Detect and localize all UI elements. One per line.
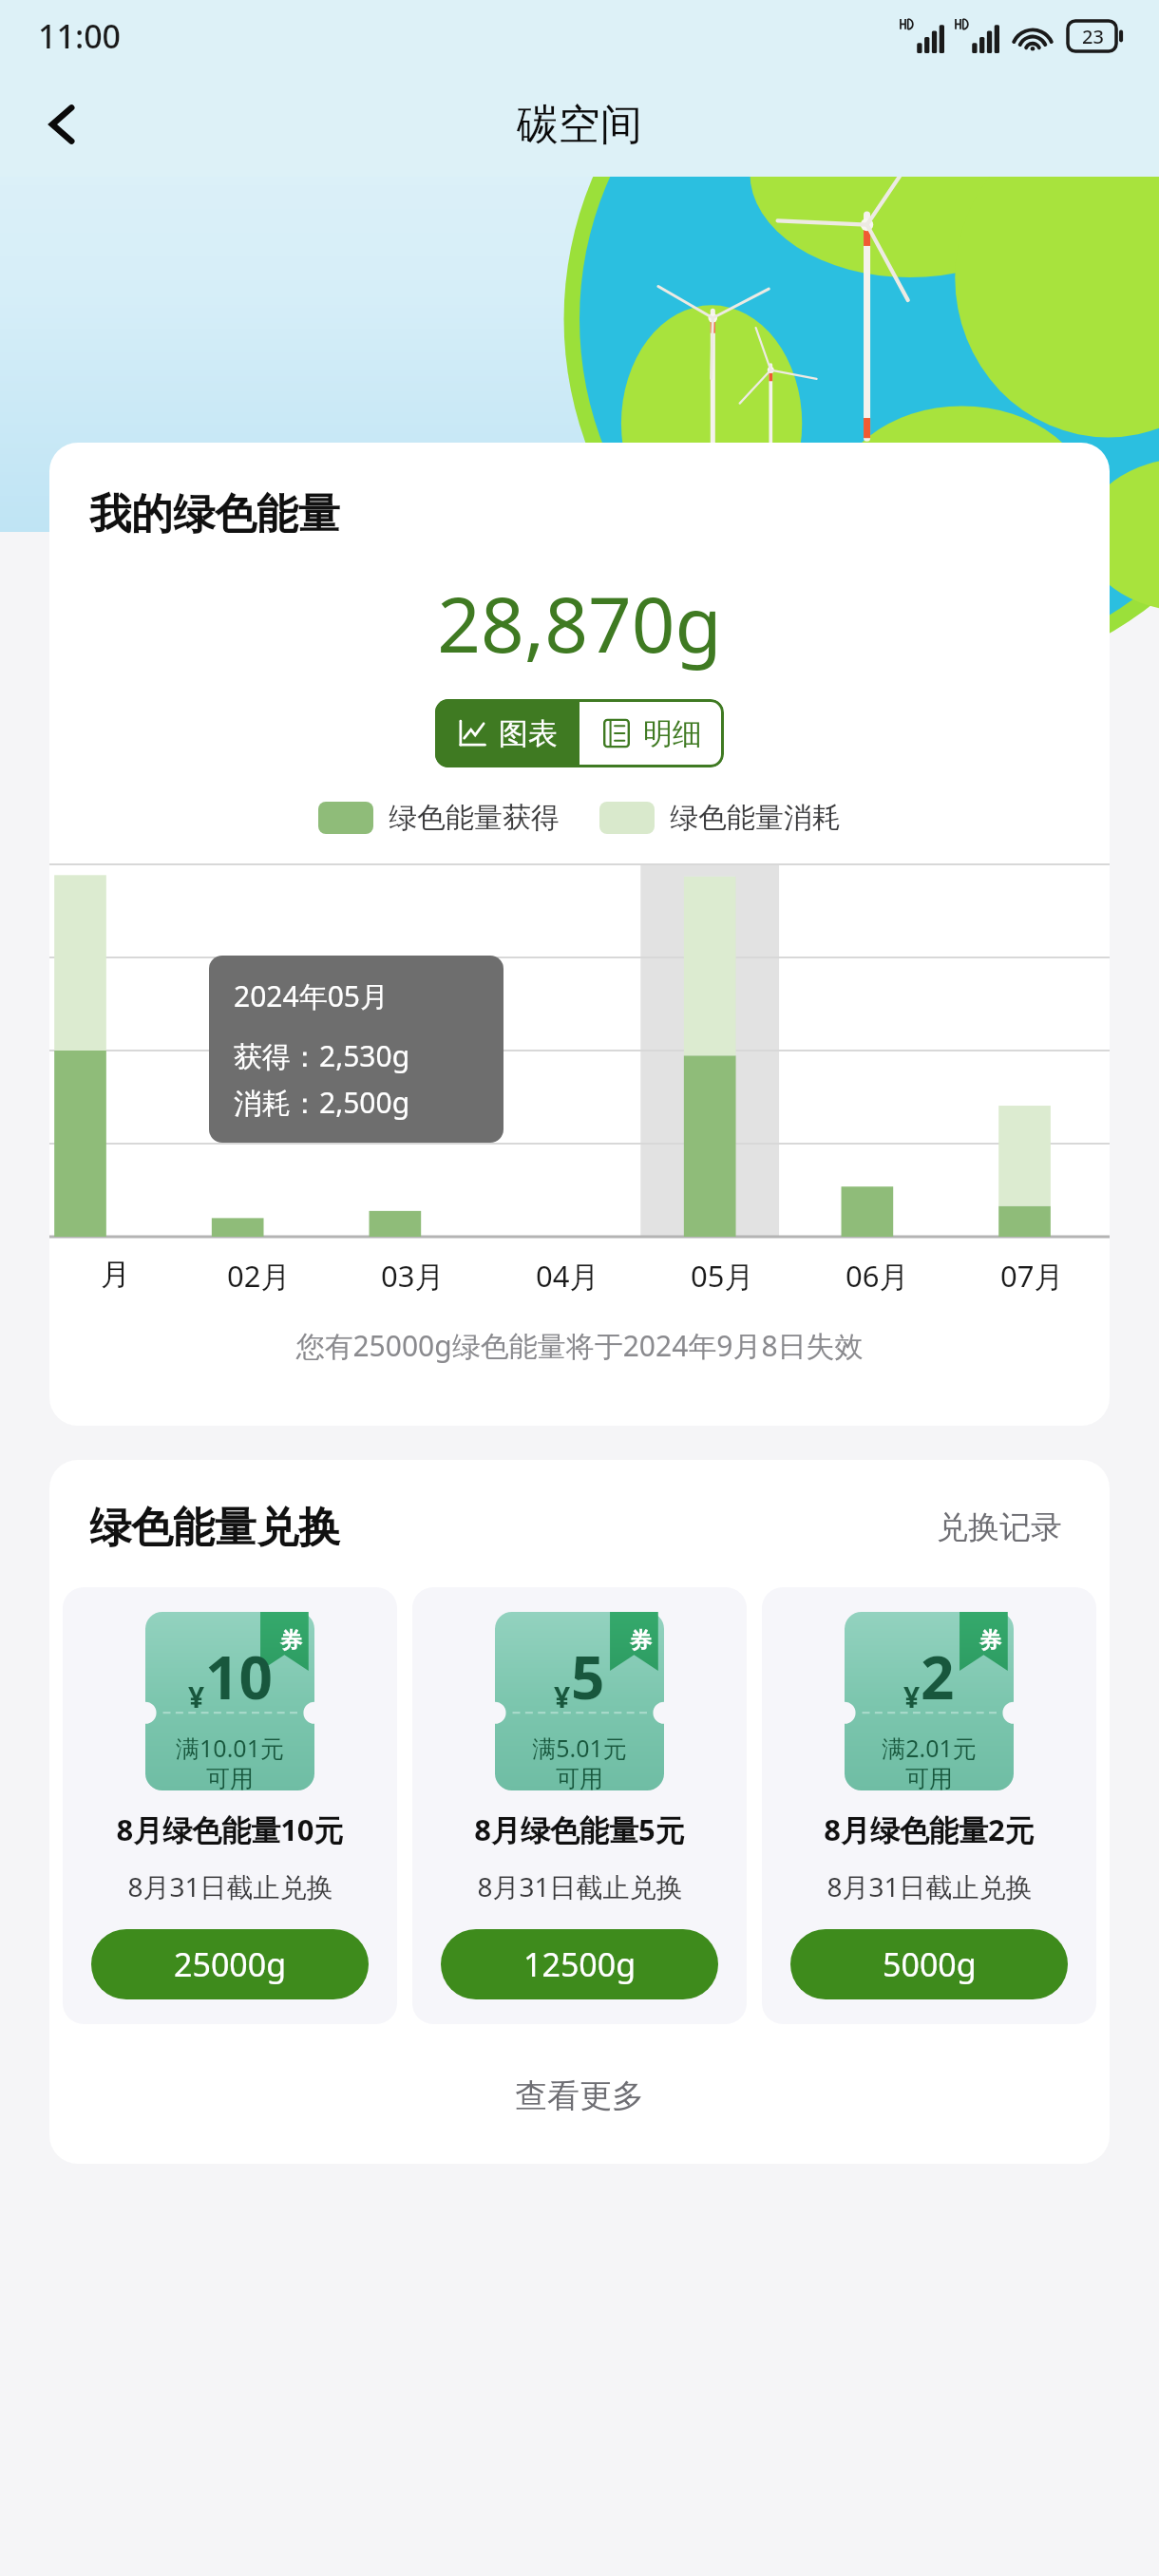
button[interactable]: 查看更多 (486, 2066, 673, 2126)
staticText: 2 (921, 1637, 955, 1716)
button[interactable]: Back (23, 85, 103, 164)
staticText: 8月绿色能量10元 (116, 1809, 344, 1849)
staticText: 兑换记录 (937, 1507, 1062, 1547)
staticText: 8月31日截止兑换 (477, 1868, 683, 1904)
staticText: 满2.01元 (882, 1732, 977, 1764)
staticText: 8月绿色能量2元 (824, 1809, 1035, 1849)
staticText: 10 (205, 1637, 273, 1716)
button[interactable]: 12500g (441, 1929, 718, 1999)
button[interactable]: ¥ (412, 1587, 747, 2024)
staticText: 月 (101, 1256, 130, 1293)
staticText: 5000g (883, 1942, 977, 1986)
staticText: 02月 (227, 1256, 291, 1296)
staticText: 我的绿色能量 (89, 488, 340, 540)
staticText: ¥ (554, 1677, 571, 1716)
staticText: ¥ (188, 1677, 205, 1716)
staticText: 获得：2,530g (234, 1036, 410, 1075)
staticText: 明细 (643, 715, 702, 752)
staticText: 25000g (174, 1942, 287, 1986)
staticText: 券 (280, 1627, 302, 1655)
staticText: 绿色能量消耗 (670, 800, 841, 836)
staticText: 06月 (845, 1256, 909, 1296)
staticText: 28,870g (49, 571, 1110, 674)
staticText: 8月31日截止兑换 (826, 1868, 1033, 1904)
staticText: 绿色能量兑换 (89, 1502, 340, 1554)
button[interactable]: 兑换记录 (929, 1500, 1070, 1555)
staticText: 2024年05月 (234, 976, 389, 1015)
staticText: 07月 (1000, 1256, 1064, 1296)
staticText: 04月 (536, 1256, 599, 1296)
staticText: ¥ (903, 1677, 921, 1716)
staticText: 可用 (905, 1764, 953, 1790)
staticText: 券 (979, 1627, 1001, 1655)
button[interactable]: ¥ (63, 1587, 397, 2024)
staticText: 满10.01元 (176, 1732, 284, 1764)
button[interactable]: 明细 (579, 699, 724, 767)
staticText: 绿色能量获得 (389, 800, 560, 836)
staticText: 8月31日截止兑换 (127, 1868, 333, 1904)
staticText: 满5.01元 (532, 1732, 627, 1764)
staticText: 05月 (691, 1256, 754, 1296)
staticText: 12500g (523, 1942, 636, 1986)
staticText: 可用 (556, 1764, 603, 1790)
button[interactable]: 图表 (435, 699, 579, 767)
staticText: 11:00 (38, 14, 122, 58)
staticText: 碳空间 (517, 99, 642, 151)
staticText: 可用 (206, 1764, 254, 1790)
staticText: 图表 (499, 715, 558, 752)
staticText: 23 (1082, 24, 1104, 49)
staticText: 券 (630, 1627, 652, 1655)
staticText: 8月绿色能量5元 (474, 1809, 685, 1849)
staticText: 5 (571, 1637, 605, 1716)
staticText: 03月 (381, 1256, 445, 1296)
staticText: 查看更多 (515, 2075, 644, 2116)
button[interactable]: 5000g (790, 1929, 1068, 1999)
button[interactable]: ¥ (762, 1587, 1096, 2024)
staticText: 您有25000g绿色能量将于2024年9月8日失效 (49, 1326, 1110, 1365)
button[interactable]: 25000g (91, 1929, 369, 1999)
staticText: 消耗：2,500g (234, 1083, 410, 1122)
